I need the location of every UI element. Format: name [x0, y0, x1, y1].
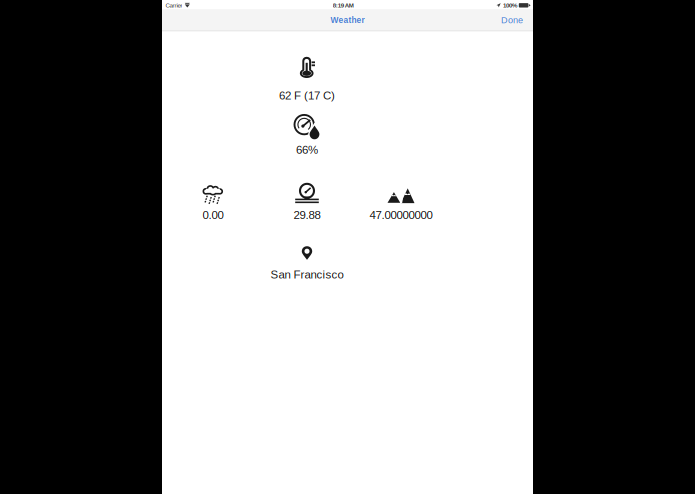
- staticText: 100%: [503, 2, 517, 9]
- staticText: Weather: [330, 15, 364, 25]
- staticText: Carrier: [165, 2, 182, 9]
- staticText: San Francisco: [270, 268, 343, 281]
- staticText: 47.00000000: [369, 209, 432, 221]
- staticText: 0.00: [202, 209, 223, 221]
- staticText: Done: [501, 15, 523, 25]
- staticText: 29.88: [293, 209, 320, 221]
- staticText: 62 F (17 C): [279, 89, 335, 102]
- staticText: 66%: [296, 143, 318, 156]
- button[interactable]: Done: [495, 10, 529, 30]
- staticText: 8:19 AM: [333, 2, 354, 9]
